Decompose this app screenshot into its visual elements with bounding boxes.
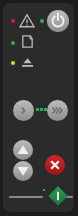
button[interactable]: Next (13, 100, 34, 121)
button[interactable]: Up (13, 140, 33, 160)
button[interactable]: Paper status (21, 35, 34, 48)
button[interactable]: Fast forward (47, 100, 68, 121)
button[interactable]: Error indicator (19, 13, 35, 29)
button[interactable]: Power (47, 10, 69, 32)
button[interactable]: Start (47, 185, 69, 207)
button[interactable]: Down (13, 161, 33, 181)
button[interactable]: Cancel (45, 155, 65, 175)
button[interactable]: Load paper (21, 56, 34, 69)
